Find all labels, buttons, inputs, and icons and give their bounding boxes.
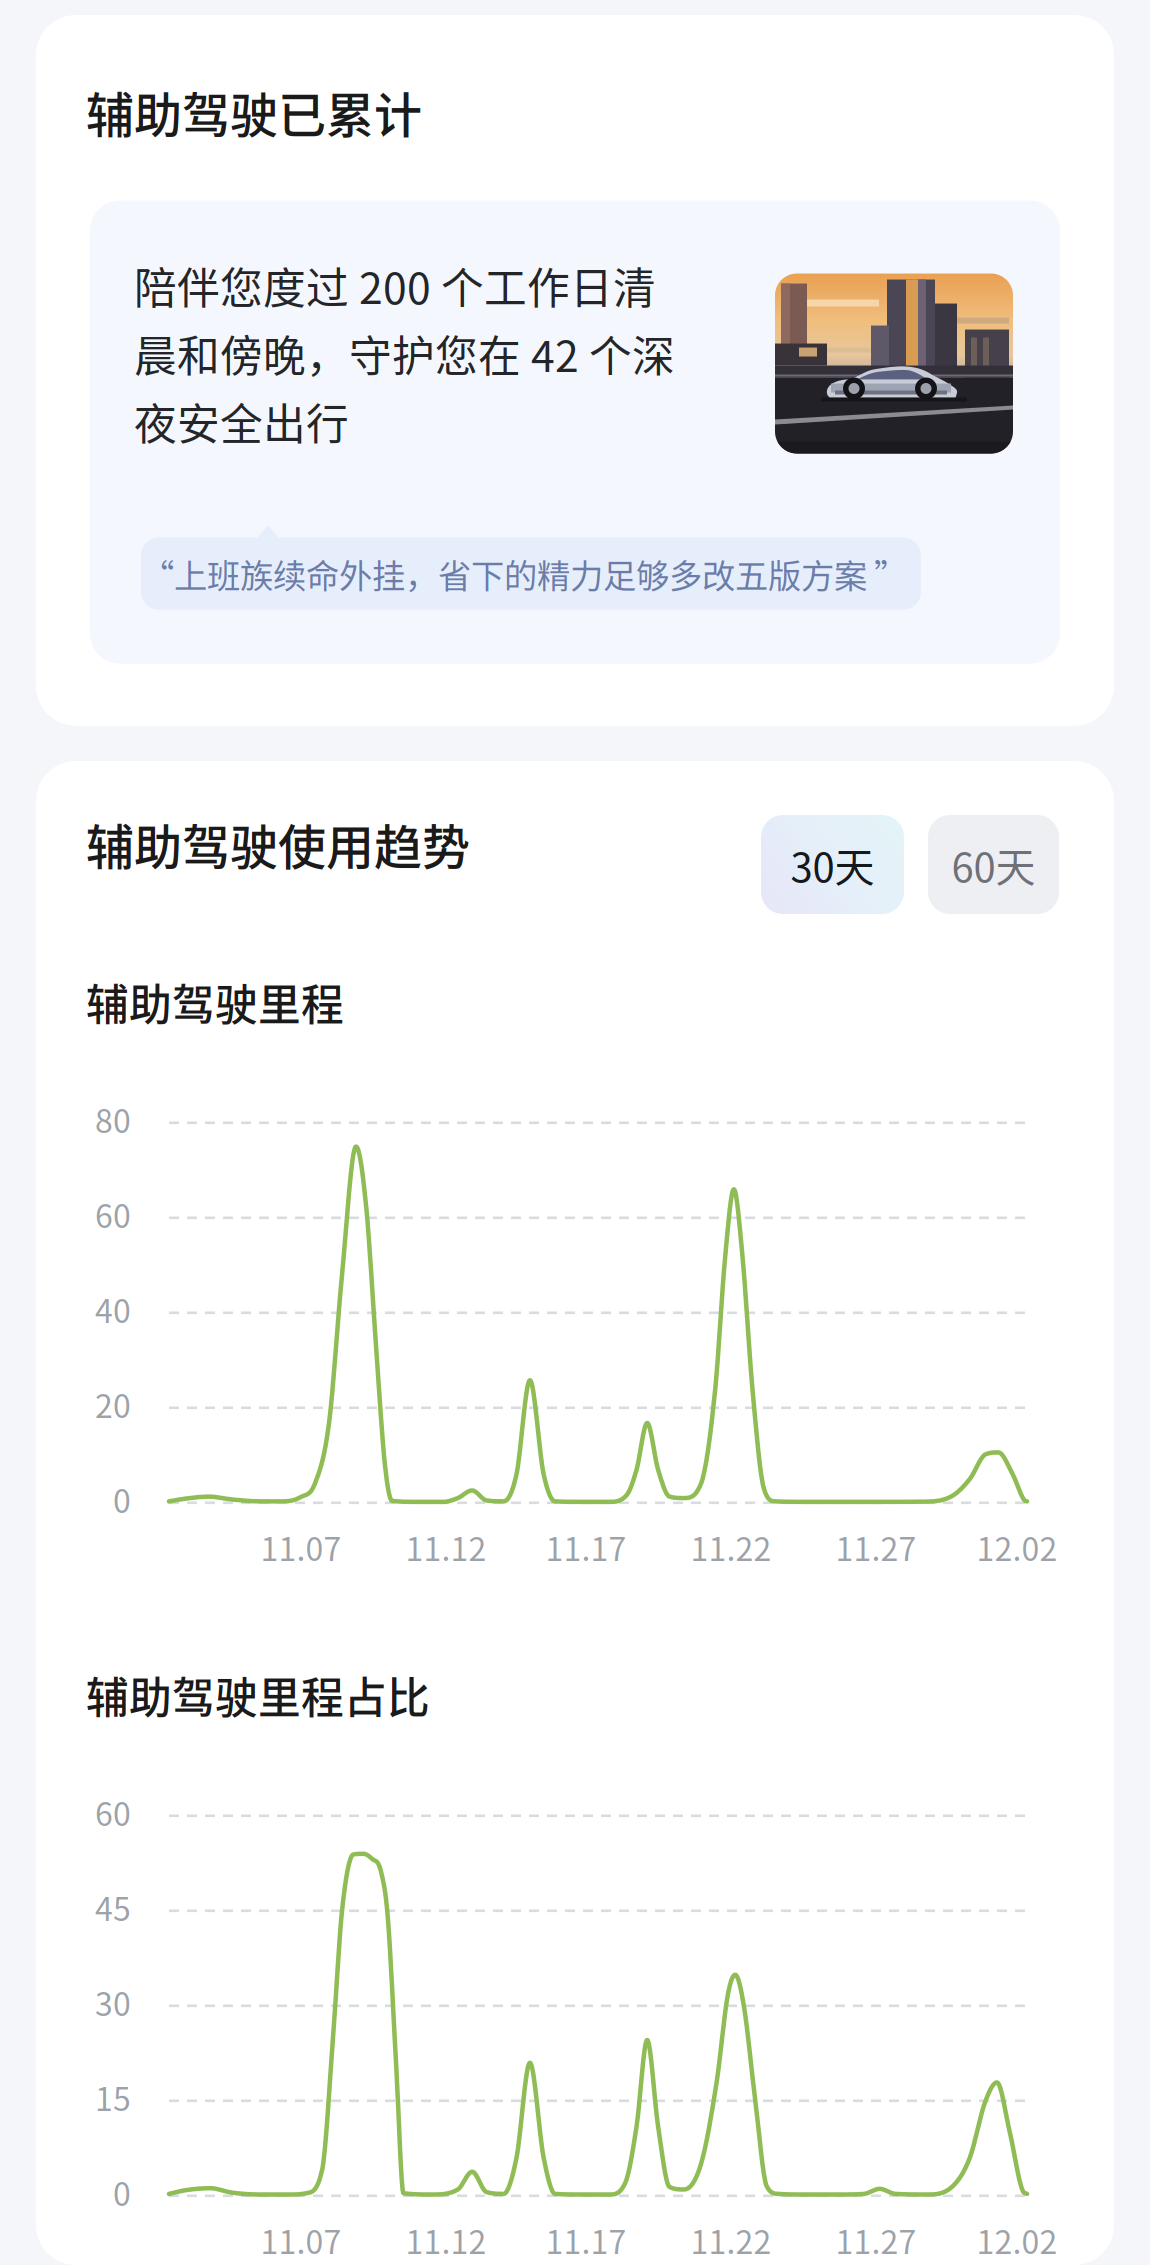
staticText: 11.17: [545, 1524, 626, 1570]
staticText: 11.07: [260, 2217, 341, 2263]
staticText: 0: [113, 2169, 131, 2215]
staticText: 15: [95, 2074, 131, 2120]
staticText: 45: [95, 1884, 131, 1930]
staticText: 辅助驾驶已累计: [86, 77, 422, 146]
staticText: 11.22: [690, 2217, 771, 2263]
staticText: 11.17: [545, 2217, 626, 2263]
staticText: 30: [95, 1979, 131, 2025]
staticText: 11.22: [690, 1524, 771, 1570]
staticText: “上班族续命外挂，省下的精力足够多改五版方案 ”: [141, 549, 907, 598]
staticText: 40: [95, 1286, 131, 1332]
staticText: 夜安全出行: [134, 390, 349, 452]
staticText: 20: [95, 1381, 131, 1427]
staticText: 辅助驾驶里程占比: [86, 1664, 430, 1726]
staticText: 12.02: [976, 2217, 1057, 2263]
staticText: 12.02: [976, 1524, 1057, 1570]
staticText: 辅助驾驶使用趋势: [86, 809, 470, 878]
staticText: 11.12: [405, 2217, 486, 2263]
button[interactable]: 60天: [928, 815, 1059, 914]
staticText: 80: [95, 1096, 131, 1142]
staticText: 11.27: [835, 2217, 916, 2263]
staticText: 11.12: [405, 1524, 486, 1570]
staticText: 陪伴您度过 200 个工作日清: [134, 254, 656, 316]
staticText: 0: [113, 1476, 131, 1522]
staticText: 11.27: [835, 1524, 916, 1570]
staticText: 11.07: [260, 1524, 341, 1570]
staticText: 60: [95, 1191, 131, 1237]
staticText: 晨和傍晚，守护您在 42 个深: [134, 322, 675, 384]
staticText: 60天: [951, 835, 1035, 893]
staticText: 60: [95, 1789, 131, 1835]
staticText: 30天: [790, 835, 874, 893]
button[interactable]: 30天: [761, 815, 904, 914]
staticText: 辅助驾驶里程: [86, 971, 344, 1033]
